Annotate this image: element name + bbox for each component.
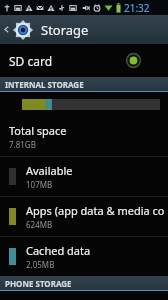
button[interactable]: Apps (app data & media cont <box>0 197 168 236</box>
staticText: INTERNAL STORAGE <box>5 79 84 90</box>
staticText: Storage <box>41 21 89 39</box>
staticText: 2.05MB <box>26 259 55 270</box>
staticText: Cached data <box>26 243 91 258</box>
button[interactable]: Cached data <box>0 237 168 276</box>
staticText: Apps (app data & media cont <box>26 203 164 218</box>
staticText: 624MB <box>26 219 53 230</box>
other: Back <box>3 26 10 33</box>
staticText: 7.81GB <box>9 139 36 150</box>
staticText: 107MB <box>26 179 53 190</box>
staticText: Total space <box>9 123 67 138</box>
staticText: Available <box>26 163 73 178</box>
button[interactable]: Available <box>0 157 168 196</box>
button[interactable]: Total space <box>0 117 168 156</box>
staticText: 21:32 <box>124 1 150 15</box>
button[interactable]: Back <box>0 15 168 44</box>
staticText: PHONE STORAGE <box>5 278 72 289</box>
button[interactable]: SD card <box>0 44 168 77</box>
staticText: SD card <box>9 53 126 69</box>
